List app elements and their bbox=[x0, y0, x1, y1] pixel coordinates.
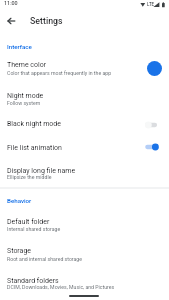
button[interactable] bbox=[0, 211, 169, 235]
staticText: Root and internal shared storage bbox=[7, 256, 83, 262]
staticText: Interface bbox=[7, 43, 32, 50]
button[interactable] bbox=[0, 270, 169, 294]
staticText: Color that appears most frequently in th… bbox=[7, 70, 112, 76]
button[interactable]: Back bbox=[0, 10, 22, 32]
staticText: Black night mode bbox=[7, 120, 61, 128]
staticText: LTE bbox=[147, 2, 155, 7]
button[interactable]: Theme color bbox=[147, 61, 162, 76]
button[interactable]: Toggle on bbox=[141, 138, 163, 156]
button[interactable] bbox=[0, 160, 169, 184]
button[interactable] bbox=[0, 56, 169, 80]
staticText: DCIM, Downloads, Movies, Music, and Pict… bbox=[7, 284, 115, 290]
staticText: Display long file name bbox=[7, 167, 76, 175]
staticText: Theme color bbox=[7, 61, 47, 69]
button[interactable] bbox=[0, 241, 169, 265]
staticText: Settings bbox=[30, 16, 63, 26]
staticText: Night mode bbox=[7, 92, 44, 100]
staticText: Behavior bbox=[7, 197, 32, 204]
button[interactable] bbox=[0, 113, 169, 135]
button[interactable] bbox=[0, 137, 169, 159]
staticText: Follow system bbox=[7, 100, 41, 106]
staticText: Ellipsize the middle bbox=[7, 174, 52, 180]
button[interactable]: Toggle off bbox=[141, 116, 163, 134]
staticText: Default folder bbox=[7, 218, 50, 226]
staticText: Standard folders bbox=[7, 277, 59, 285]
staticText: Internal shared storage bbox=[7, 226, 61, 232]
button[interactable] bbox=[0, 85, 169, 109]
staticText: 11:00 bbox=[4, 0, 18, 6]
staticText: Storage bbox=[7, 247, 32, 255]
staticText: File list animation bbox=[7, 144, 62, 152]
